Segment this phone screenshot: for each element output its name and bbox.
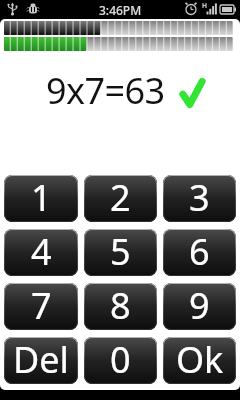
staticText: 9 <box>189 283 210 328</box>
staticText: 5 <box>110 229 131 274</box>
staticText: Ok <box>176 337 224 382</box>
staticText: 3:46PM <box>99 2 142 18</box>
button[interactable]: 6 <box>163 229 236 276</box>
staticText: 7 <box>31 283 52 328</box>
button[interactable]: 3 <box>163 175 236 222</box>
button[interactable]: 9 <box>163 283 236 330</box>
button[interactable]: Ok <box>163 337 236 384</box>
button[interactable]: 7 <box>4 283 78 330</box>
button[interactable]: 5 <box>84 229 157 276</box>
button[interactable]: 2 <box>84 175 157 222</box>
button[interactable]: 8 <box>84 283 157 330</box>
staticText: 2 <box>110 175 131 220</box>
staticText: Del <box>13 337 69 382</box>
button[interactable]: 1 <box>4 175 78 222</box>
staticText: 6 <box>189 229 210 274</box>
button[interactable]: 0 <box>84 337 157 384</box>
button[interactable]: 4 <box>4 229 78 276</box>
staticText: 1 <box>31 175 52 220</box>
staticText: 0 <box>110 337 131 382</box>
staticText: 8 <box>110 283 131 328</box>
staticText: 9x7=63 <box>46 66 165 104</box>
button[interactable]: Del <box>4 337 78 384</box>
staticText: 3 <box>189 175 210 220</box>
staticText: 4 <box>31 229 52 274</box>
